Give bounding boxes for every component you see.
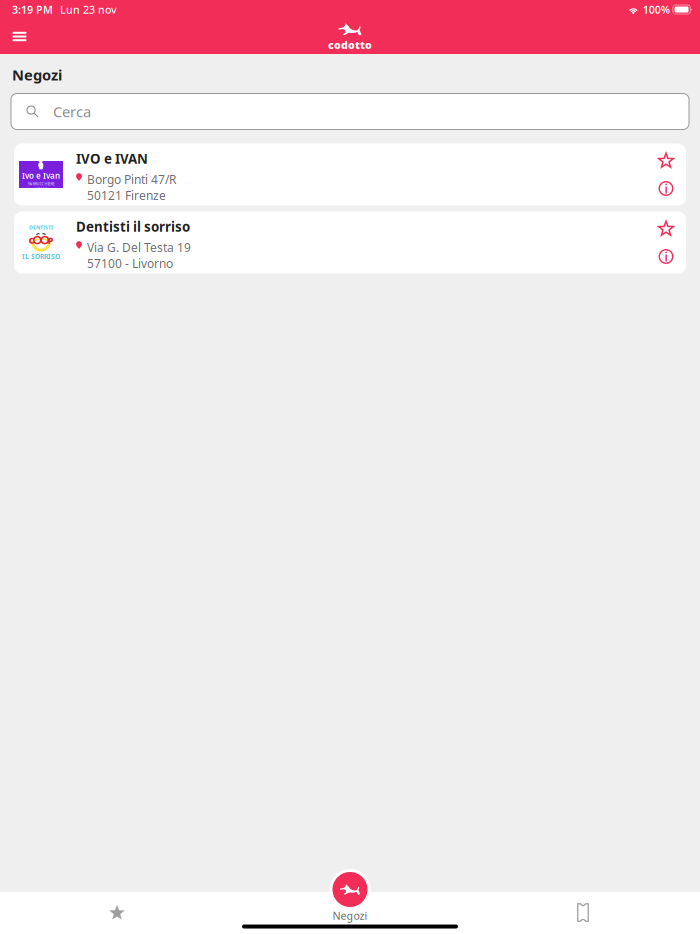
- staticText: Cerca: [53, 102, 91, 121]
- button[interactable]: Menu: [6, 20, 33, 53]
- staticText: Negozi: [332, 908, 367, 923]
- button[interactable]: Add to favourites: [653, 147, 679, 173]
- staticText: DENTISTI: [29, 224, 53, 231]
- staticText: PARRUCCHIERE: [27, 181, 54, 186]
- staticText: 100%: [643, 2, 670, 17]
- staticText: Ivo e Ivan: [22, 170, 60, 181]
- staticText: 57100 - Livorno: [87, 255, 173, 271]
- button[interactable]: Shops: [330, 869, 370, 909]
- staticText: Lun 23 nov: [60, 2, 117, 17]
- staticText: i: [664, 181, 667, 197]
- staticText: 50121 Firenze: [87, 187, 166, 203]
- button[interactable]: Information: [653, 175, 679, 201]
- button[interactable]: Negozi: [295, 897, 405, 927]
- staticText: UOMO: [34, 186, 47, 192]
- staticText: IVO e IVAN: [76, 150, 148, 167]
- staticText: Dentisti il sorriso: [76, 218, 190, 235]
- staticText: C: [28, 234, 34, 246]
- button[interactable]: Ivo e Ivan: [14, 143, 686, 205]
- button[interactable]: Add to favourites: [653, 215, 679, 241]
- staticText: P: [47, 234, 53, 246]
- staticText: 3:19 PM: [12, 2, 53, 17]
- button[interactable]: Tickets: [528, 897, 638, 927]
- button[interactable]: DENTISTI: [14, 211, 686, 273]
- staticText: codotto: [328, 38, 372, 52]
- button[interactable]: Favourites: [62, 897, 172, 927]
- staticText: Via G. Del Testa 19: [87, 239, 191, 255]
- button[interactable]: Information: [653, 243, 679, 269]
- staticText: Negozi: [12, 65, 62, 84]
- staticText: IL SORRISO: [22, 252, 60, 261]
- staticText: Borgo Pinti 47/R: [87, 171, 176, 187]
- staticText: i: [664, 249, 667, 265]
